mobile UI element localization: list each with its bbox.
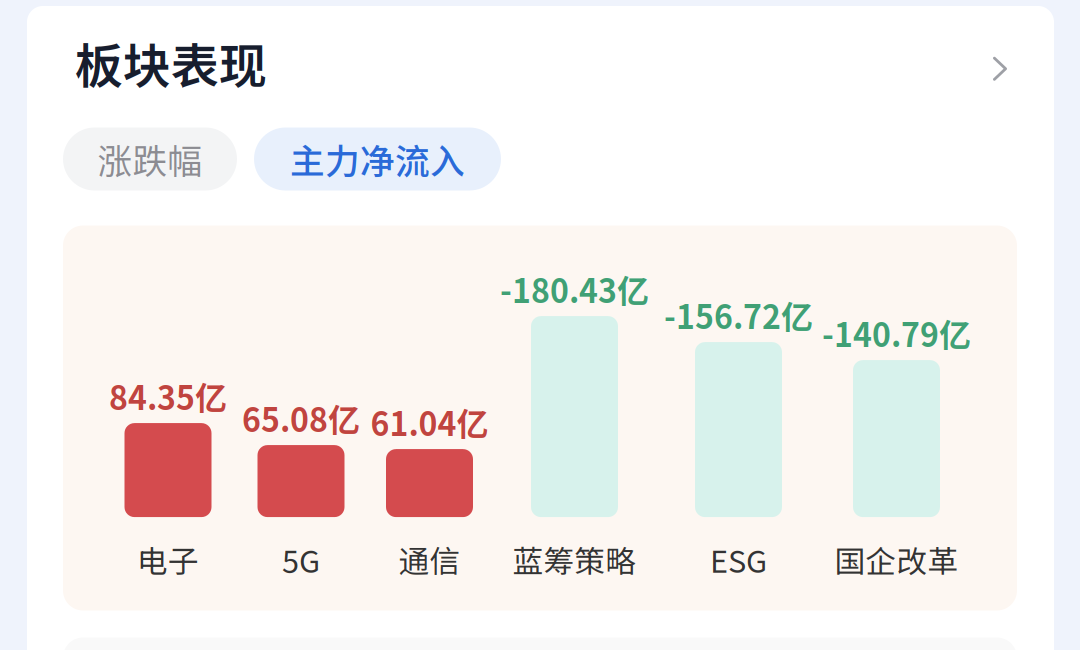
button[interactable]: 主力净流入: [254, 127, 501, 190]
staticText: 涨跌幅: [97, 134, 202, 184]
staticText: -156.72亿: [664, 292, 813, 338]
staticText: 蓝筹策略: [512, 537, 636, 581]
staticText: 电子: [137, 537, 199, 581]
staticText: 通信: [398, 537, 460, 581]
staticText: -180.43亿: [500, 266, 649, 312]
staticText: 国企改革: [834, 537, 958, 581]
staticText: 61.04亿: [370, 399, 488, 445]
staticText: ESG: [710, 537, 767, 581]
button[interactable]: 涨跌幅: [63, 127, 237, 190]
staticText: 65.08亿: [242, 395, 360, 441]
staticText: 5G: [282, 537, 320, 581]
staticText: -140.79亿: [822, 310, 971, 356]
button[interactable]: 板块表现: [27, 28, 1054, 97]
staticText: 主力净流入: [290, 134, 465, 184]
staticText: 84.35亿: [109, 373, 227, 419]
staticText: 板块表现: [75, 28, 267, 97]
